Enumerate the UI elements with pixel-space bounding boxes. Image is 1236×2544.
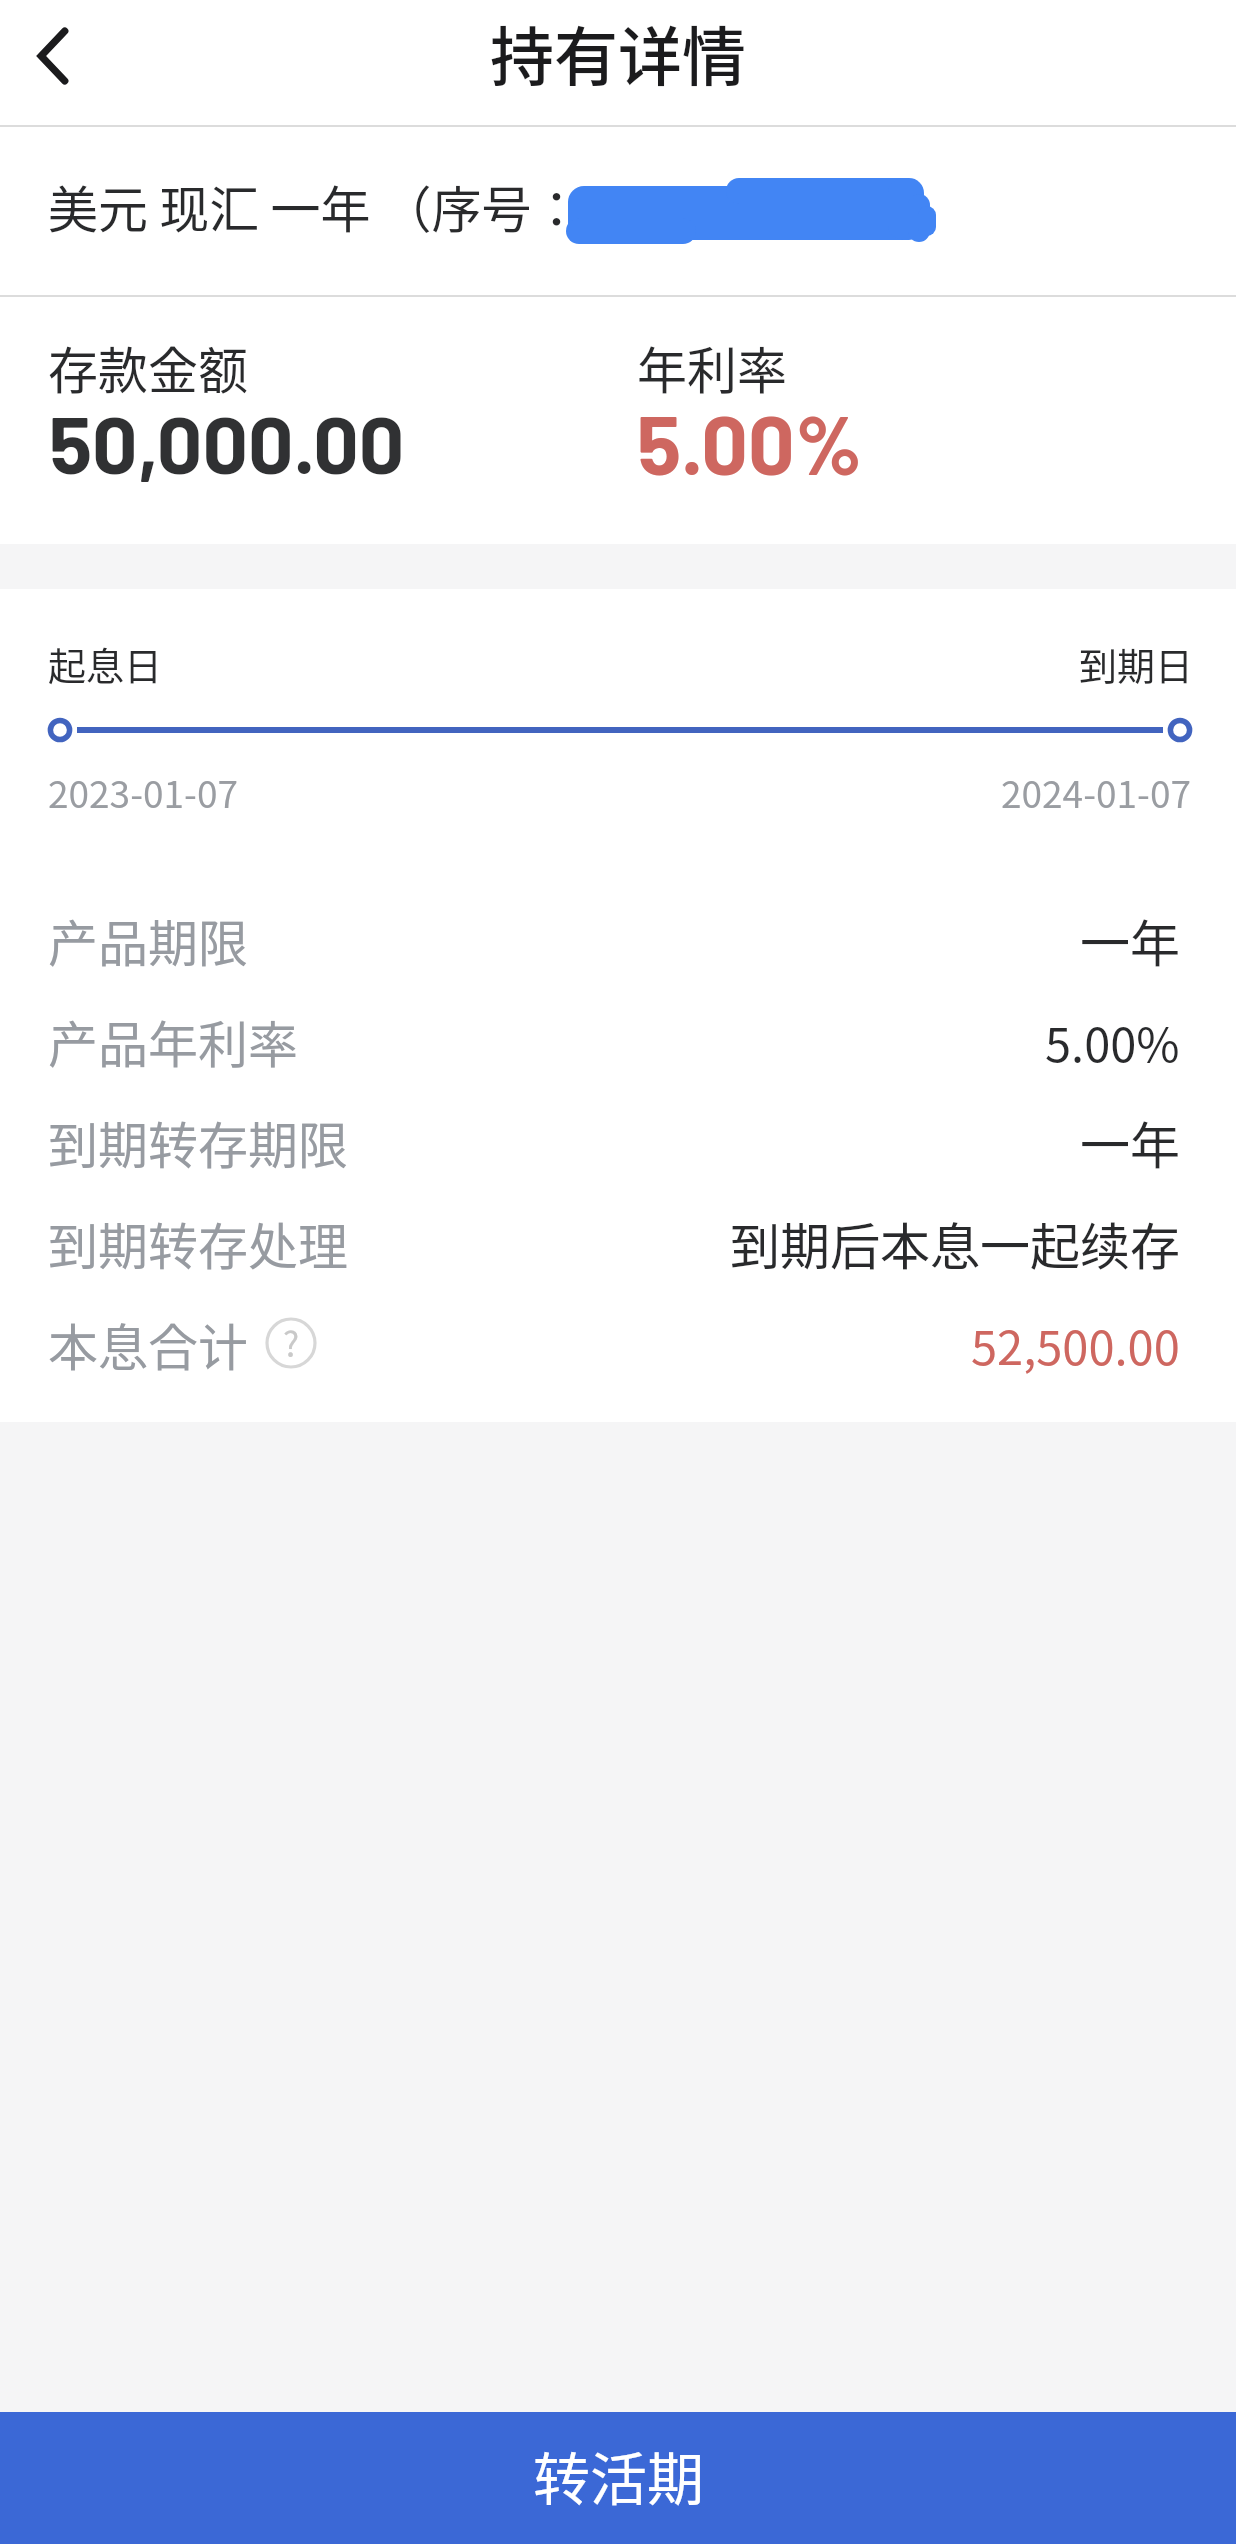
staticText: 到期后本息一起续存 <box>730 1207 1180 1279</box>
staticText: 2023-01-07 <box>48 765 238 819</box>
staticText: 美元 现汇 一年 （序号： <box>48 170 582 242</box>
staticText: 到期转存期限 <box>48 1106 348 1178</box>
staticText: 产品期限 <box>48 904 248 976</box>
staticText: 持有详情 <box>490 6 746 99</box>
staticText: 转活期 <box>533 2434 704 2517</box>
staticText: 本息合计 <box>48 1308 248 1380</box>
staticText: 52,500.00 <box>971 1310 1180 1378</box>
staticText: 起息日 <box>48 636 163 691</box>
button[interactable]: 转活期 <box>0 2412 1236 2544</box>
button[interactable]: 到期转存处理 <box>0 1192 1236 1293</box>
staticText: 一年 <box>1080 1106 1180 1178</box>
staticText: 一年 <box>1080 904 1180 976</box>
staticText: ? <box>283 1318 300 1367</box>
button[interactable]: 本息合计 <box>0 1293 1236 1394</box>
staticText: 5.00% <box>1045 1007 1180 1075</box>
button[interactable]: 产品期限 <box>0 889 1236 990</box>
staticText: 2024-01-07 <box>1001 765 1191 819</box>
button[interactable]: 到期转存期限 <box>0 1091 1236 1192</box>
staticText: 50,000.00 <box>49 394 405 490</box>
button[interactable]: Back <box>1 13 101 113</box>
staticText: 到期日 <box>1079 636 1194 691</box>
staticText: 到期转存处理 <box>48 1207 348 1279</box>
staticText: 存款金额 <box>48 331 248 403</box>
staticText: 年利率 <box>637 331 787 403</box>
staticText: 5.00% <box>637 393 863 491</box>
staticText: 产品年利率 <box>48 1005 298 1077</box>
button[interactable]: 产品年利率 <box>0 990 1236 1091</box>
